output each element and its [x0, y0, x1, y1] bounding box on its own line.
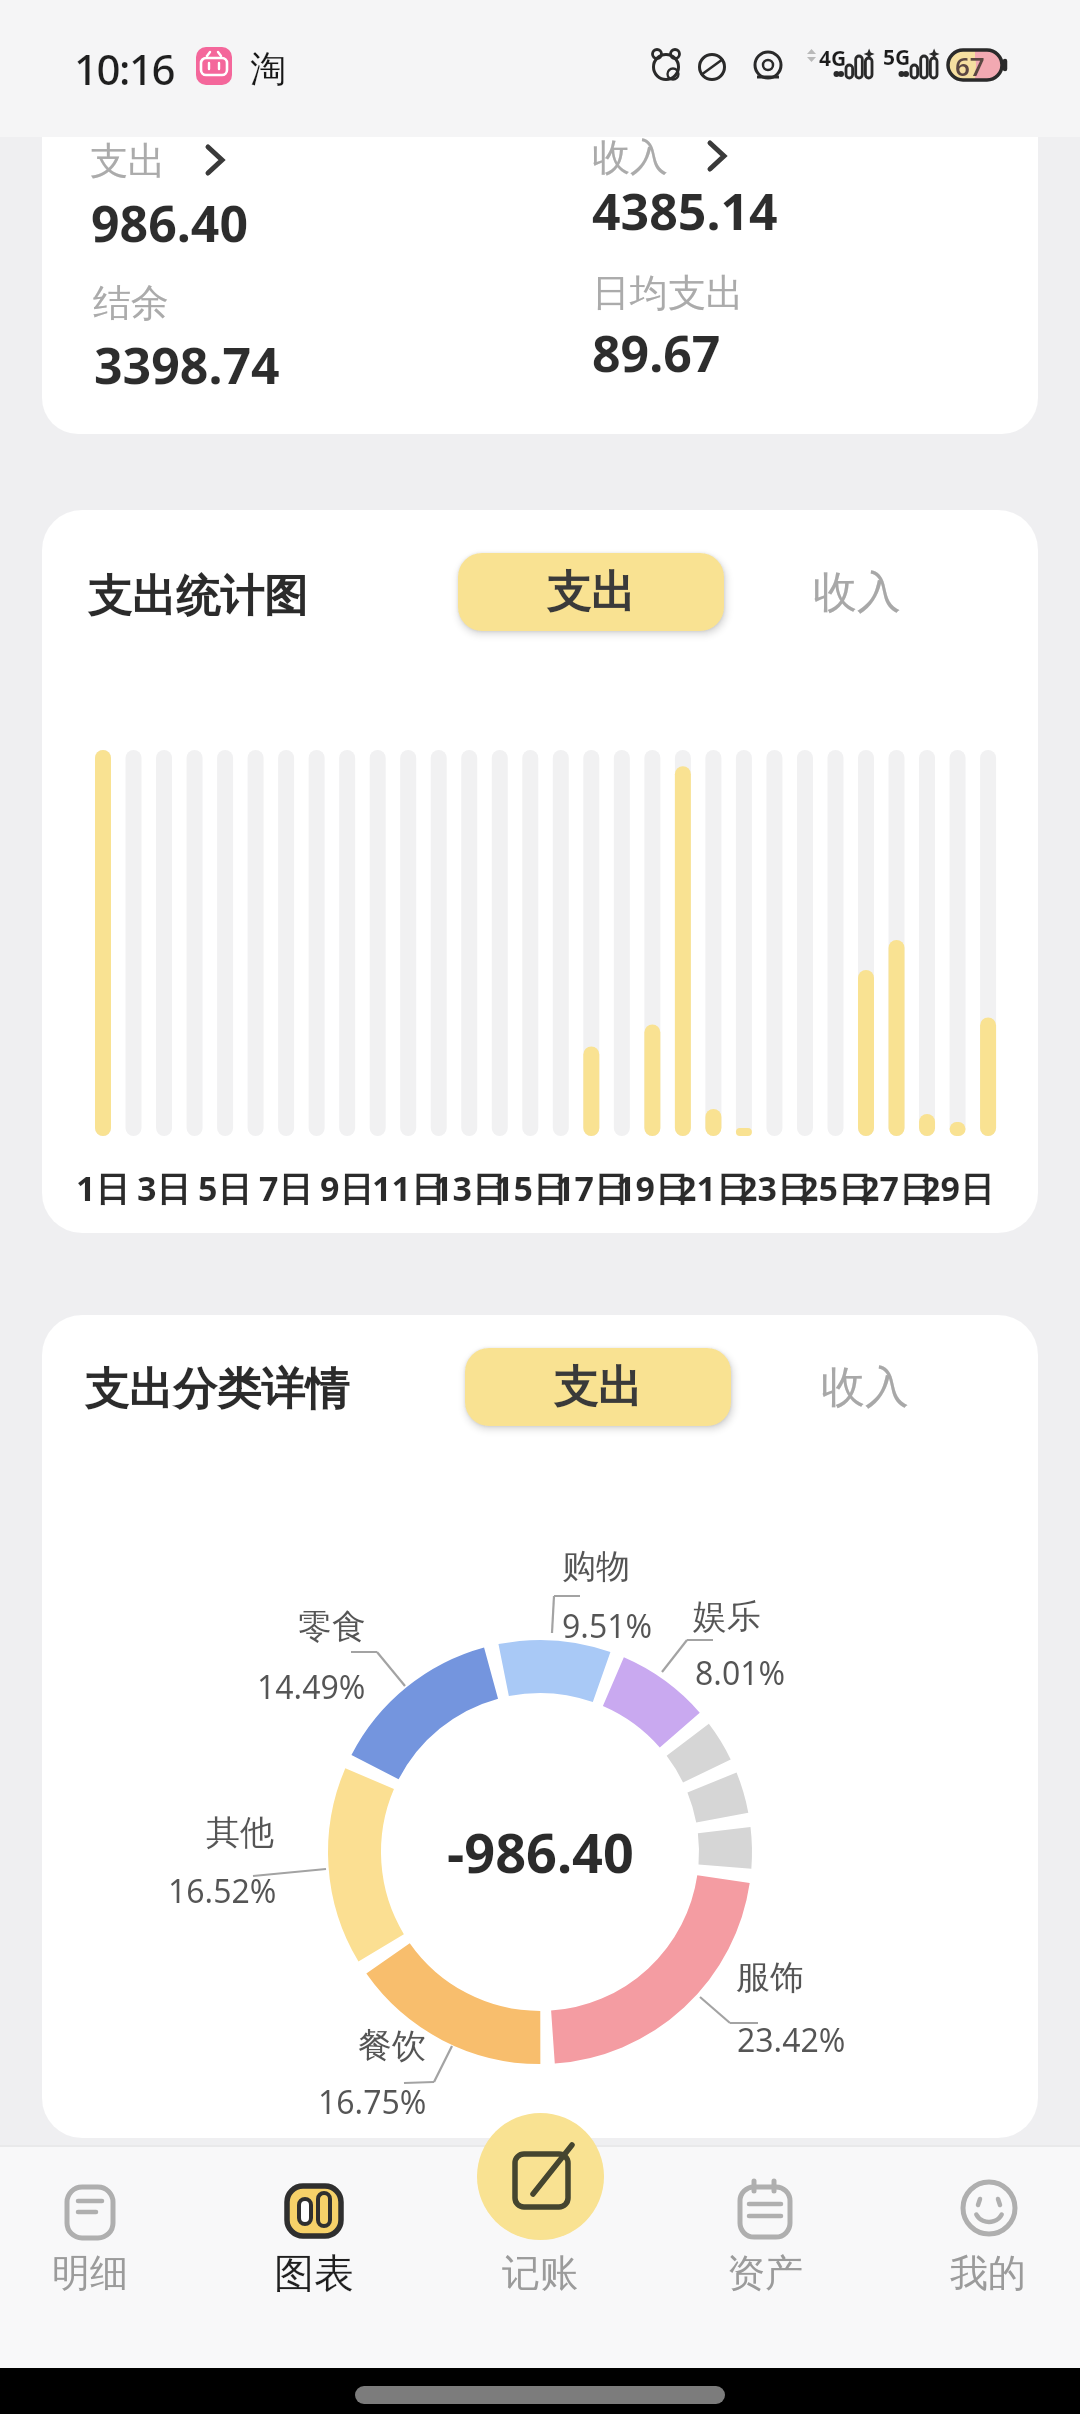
staticText: 支出 [554, 1360, 642, 1415]
staticText: 11日 [372, 1165, 445, 1209]
staticText: 明细 [52, 2249, 128, 2297]
staticText: 29日 [921, 1165, 994, 1209]
staticText: 13日 [433, 1165, 506, 1209]
button[interactable]: 记账 [470, 2248, 610, 2298]
button[interactable]: 图表 [244, 2160, 384, 2310]
staticText: 资产 [727, 2249, 803, 2297]
button[interactable]: 我的 [918, 2160, 1058, 2310]
staticText: 23日 [738, 1165, 811, 1209]
staticText: 27日 [860, 1165, 933, 1209]
staticText: 支出分类详情 [85, 1362, 349, 1417]
button[interactable]: 明细 [20, 2160, 160, 2310]
staticText: 结余 [93, 279, 169, 323]
staticText: -986.40 [447, 1815, 634, 1889]
staticText: 5日 [198, 1165, 252, 1209]
staticText: 23.42% [737, 2018, 846, 2062]
button[interactable] [477, 2113, 604, 2240]
button[interactable]: 支出 [90, 137, 210, 181]
staticText: 16.52% [168, 1869, 277, 1913]
staticText: 16.75% [318, 2080, 427, 2124]
staticText: 7日 [259, 1165, 313, 1209]
staticText: 日均支出 [592, 269, 744, 313]
staticText: 21日 [677, 1165, 750, 1209]
button[interactable]: 支出 [465, 1348, 731, 1426]
staticText: 10:16 [74, 40, 175, 90]
staticText: 9.51% [562, 1604, 653, 1648]
button[interactable]: 资产 [695, 2160, 835, 2310]
staticText: 5G [883, 43, 911, 67]
button[interactable]: 支出 [458, 553, 724, 631]
staticText: 支出 [547, 565, 635, 620]
staticText: 17日 [555, 1165, 628, 1209]
staticText: 服饰 [736, 1956, 804, 1999]
staticText: 19日 [616, 1165, 689, 1209]
staticText: 娱乐 [693, 1595, 761, 1638]
staticText: 4G [819, 44, 847, 68]
staticText: 收入 [821, 1360, 909, 1415]
staticText: 986.40 [91, 189, 249, 247]
staticText: 1日 [76, 1165, 130, 1209]
staticText: 67 [955, 48, 985, 82]
staticText: 25日 [799, 1165, 872, 1209]
staticText: 餐饮 [358, 2024, 426, 2067]
staticText: 收入 [813, 565, 901, 620]
staticText: 收入 [592, 137, 668, 177]
button[interactable]: 收入 [752, 553, 962, 631]
staticText: 8.01% [695, 1651, 786, 1695]
staticText: 15日 [494, 1165, 567, 1209]
staticText: 其他 [206, 1811, 274, 1854]
staticText: 购物 [562, 1545, 630, 1588]
staticText: 图表 [274, 2248, 354, 2298]
staticText: 14.49% [257, 1665, 366, 1709]
staticText: 9日 [320, 1165, 374, 1209]
staticText: 89.67 [592, 319, 721, 377]
staticText: 零食 [298, 1605, 366, 1648]
button[interactable]: 收入 [760, 1348, 970, 1426]
staticText: 3日 [137, 1165, 191, 1209]
staticText: 4385.14 [592, 177, 778, 235]
staticText: 淘 [250, 46, 286, 86]
staticText: 记账 [502, 2249, 578, 2297]
staticText: 支出 [90, 137, 166, 181]
button[interactable]: 收入 [592, 137, 712, 177]
staticText: 我的 [950, 2249, 1026, 2297]
staticText: 支出统计图 [88, 569, 308, 624]
staticText: 3398.74 [94, 331, 280, 389]
